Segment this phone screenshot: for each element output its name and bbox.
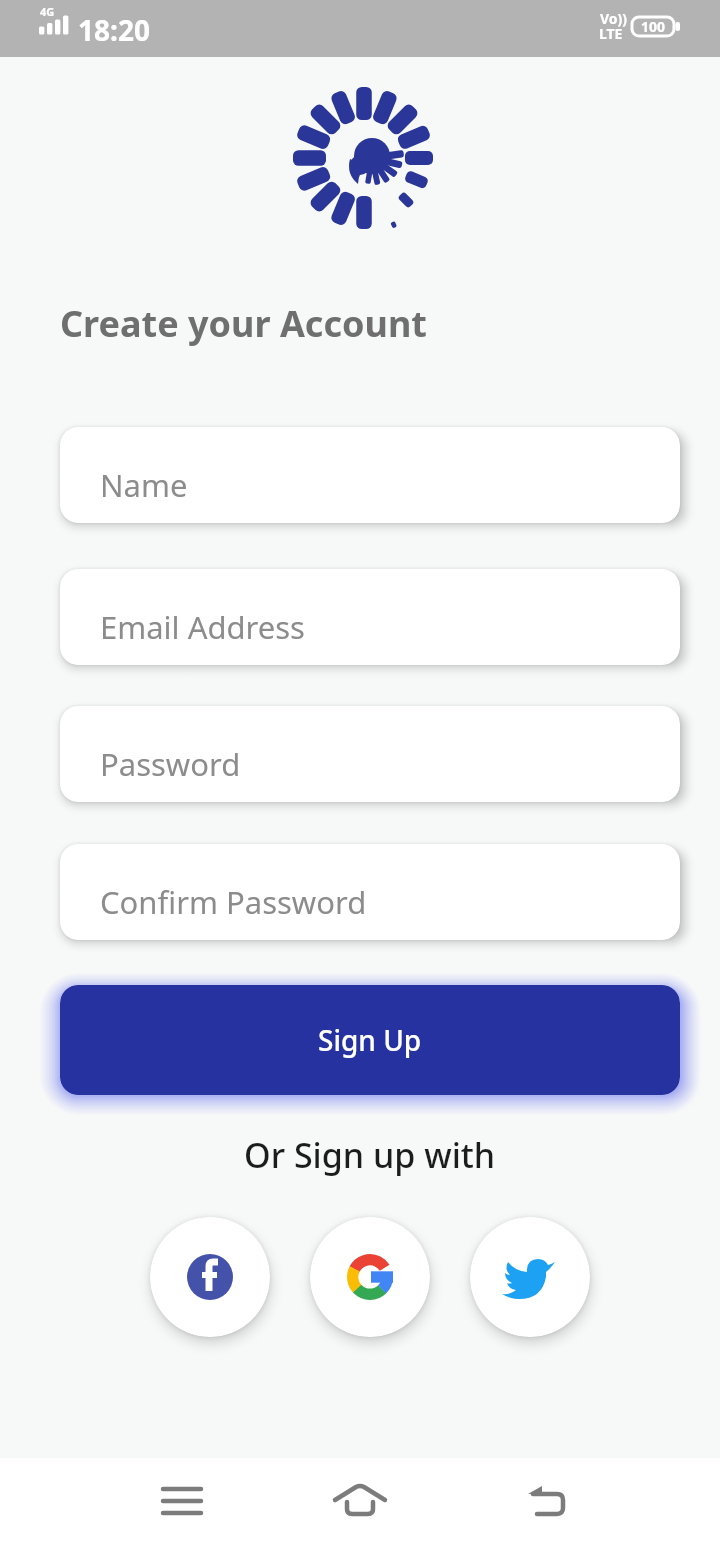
staticText: Confirm Password	[100, 881, 367, 923]
staticText: Create your Account	[60, 299, 427, 348]
staticText: 18:20	[78, 11, 150, 49]
staticText: Email Address	[100, 606, 305, 648]
staticText: Name	[100, 464, 188, 506]
button[interactable]	[150, 1217, 270, 1337]
staticText: LTE	[599, 24, 623, 43]
staticText: Or Sign up with	[244, 1132, 496, 1178]
staticText: Password	[100, 743, 241, 785]
button[interactable]: Confirm Password	[60, 844, 680, 940]
button[interactable]	[310, 1217, 430, 1337]
button[interactable]: Name	[60, 427, 680, 523]
button[interactable]: Email Address	[60, 569, 680, 665]
button[interactable]	[512, 1464, 584, 1538]
button[interactable]	[470, 1217, 590, 1337]
staticText: 4G	[40, 4, 55, 19]
button[interactable]: Password	[60, 706, 680, 802]
staticText: 100	[641, 17, 666, 36]
button[interactable]	[324, 1464, 396, 1538]
button[interactable]: Sign Up	[60, 985, 680, 1095]
staticText: Sign Up	[318, 1021, 422, 1059]
button[interactable]	[146, 1464, 218, 1538]
staticText: Vo))	[600, 9, 628, 28]
